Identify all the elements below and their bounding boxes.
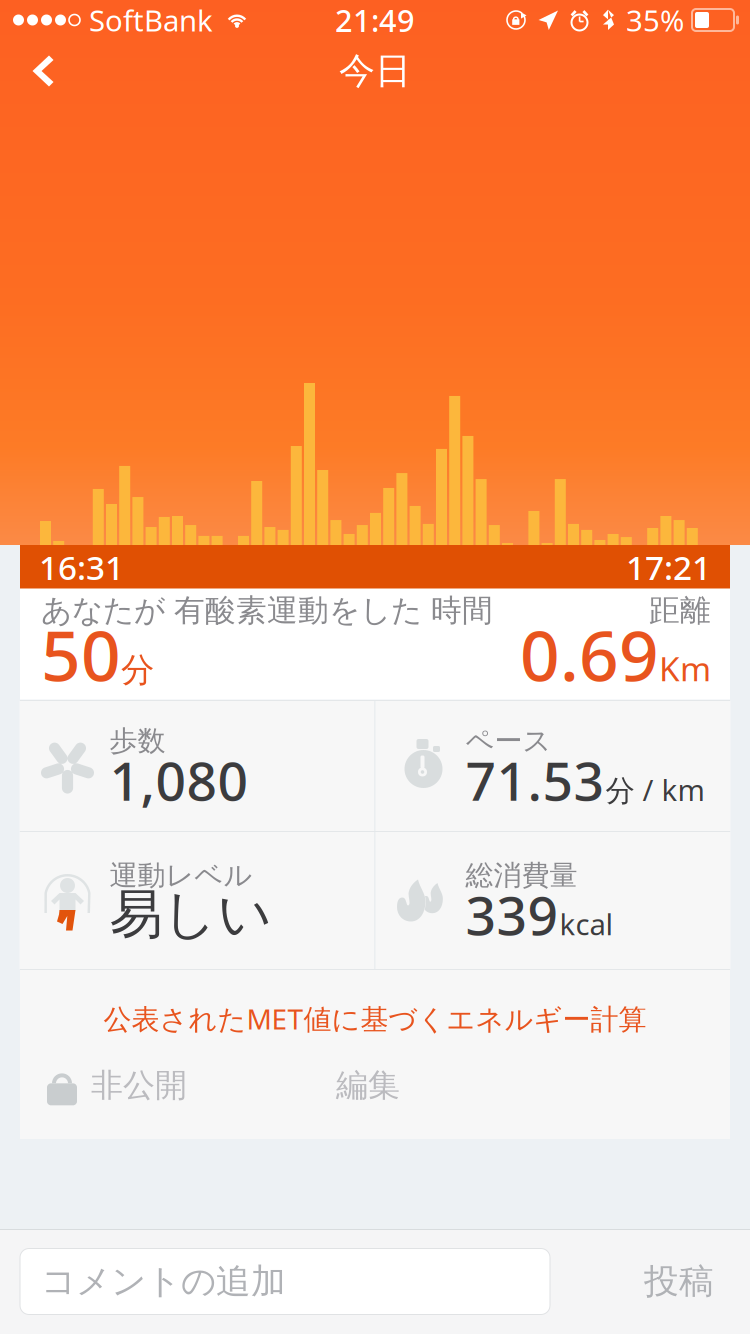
staticText: 339 <box>465 879 558 950</box>
staticText: 総消費量 <box>465 858 577 893</box>
button[interactable]: 非公開 <box>20 1059 187 1111</box>
staticText: 易しい <box>109 882 272 947</box>
staticText: 公表されたMET値に基づくエネルギー計算 <box>103 1000 646 1037</box>
button[interactable]: Back <box>0 43 76 99</box>
staticText: コメントの追加 <box>41 1260 286 1303</box>
staticText: Km <box>659 646 711 691</box>
staticText: 非公開 <box>91 1066 187 1105</box>
staticText: 分 / km <box>605 770 704 809</box>
staticText: 35% <box>626 0 684 39</box>
staticText: 運動レベル <box>109 858 252 893</box>
staticText: 50 <box>41 608 121 700</box>
staticText: kcal <box>559 904 613 943</box>
staticText: 71.53 <box>465 745 604 815</box>
staticText: 投稿 <box>644 1260 714 1303</box>
staticText: 編集 <box>336 1066 400 1105</box>
staticText: 1,080 <box>109 745 248 815</box>
button[interactable]: コメントの追加 <box>20 1248 550 1314</box>
staticText: SoftBank <box>89 0 213 39</box>
staticText: 分 <box>121 650 154 691</box>
staticText: 21:49 <box>335 0 415 40</box>
staticText: 17:21 <box>626 545 711 589</box>
staticText: 0.69 <box>520 608 659 700</box>
button[interactable]: 公表されたMET値に基づくエネルギー計算 <box>83 992 666 1045</box>
button[interactable]: 投稿 <box>620 1240 738 1323</box>
staticText: 今日 <box>339 49 411 93</box>
staticText: 16:31 <box>39 545 124 589</box>
staticText: あなたが 有酸素運動をした 時間 <box>41 592 493 629</box>
staticText: 距離 <box>649 592 711 629</box>
staticText: ペース <box>465 724 551 758</box>
staticText: 歩数 <box>109 724 165 758</box>
button[interactable]: 編集 <box>310 1054 426 1117</box>
